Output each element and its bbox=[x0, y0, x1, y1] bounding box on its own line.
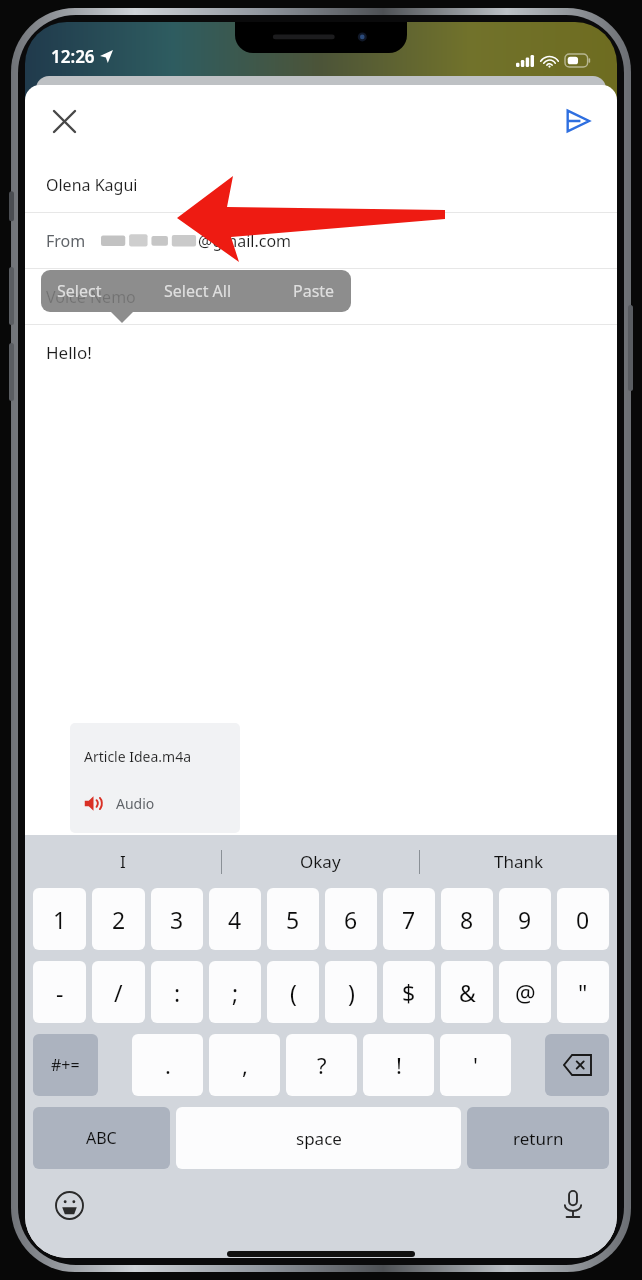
staticText: Select All bbox=[164, 280, 232, 302]
staticText: ABC bbox=[86, 1127, 117, 1149]
staticText: Article Idea.m4a bbox=[84, 747, 192, 766]
button[interactable]: Backspace bbox=[545, 1034, 609, 1096]
button[interactable]: & bbox=[441, 961, 493, 1023]
button[interactable]: @ bbox=[499, 961, 551, 1023]
button[interactable]: space bbox=[176, 1107, 461, 1169]
staticText: Voice Nemo bbox=[46, 286, 136, 308]
staticText: Olena Kagui bbox=[46, 174, 138, 196]
button[interactable]: 4 bbox=[209, 888, 261, 950]
button[interactable]: : bbox=[151, 961, 203, 1023]
button[interactable]: Article Idea.m4a bbox=[70, 723, 240, 833]
staticText: / bbox=[114, 977, 123, 1008]
button[interactable]: Olena Kagui bbox=[25, 157, 617, 212]
button[interactable]: " bbox=[557, 961, 609, 1023]
staticText: ' bbox=[473, 1050, 478, 1080]
staticText: 4 bbox=[228, 904, 242, 935]
staticText: #+= bbox=[51, 1054, 80, 1076]
button[interactable]: Okay bbox=[222, 835, 419, 888]
button[interactable]: ABC bbox=[33, 1107, 170, 1169]
staticText: 1 bbox=[53, 904, 67, 935]
staticText: 2 bbox=[112, 904, 126, 935]
button[interactable]: 6 bbox=[325, 888, 377, 950]
button[interactable]: , bbox=[209, 1034, 280, 1096]
staticText: space bbox=[296, 1127, 342, 1150]
button[interactable]: ; bbox=[209, 961, 261, 1023]
button[interactable]: I bbox=[25, 835, 221, 888]
staticText: 0 bbox=[576, 904, 590, 935]
button[interactable]: Select All bbox=[164, 280, 232, 302]
button[interactable]: 9 bbox=[499, 888, 551, 950]
staticText: - bbox=[56, 977, 64, 1008]
staticText: , bbox=[242, 1050, 248, 1080]
button[interactable]: Emoji bbox=[47, 1183, 91, 1227]
button[interactable]: Paste bbox=[293, 280, 335, 302]
button[interactable]: Send bbox=[555, 98, 601, 144]
button[interactable]: ) bbox=[325, 961, 377, 1023]
staticText: ) bbox=[348, 977, 355, 1008]
button[interactable]: 3 bbox=[151, 888, 203, 950]
button[interactable]: / bbox=[92, 961, 145, 1023]
staticText: 12:26 bbox=[51, 45, 95, 68]
staticText: ; bbox=[232, 977, 239, 1008]
button[interactable]: ? bbox=[286, 1034, 357, 1096]
button[interactable]: 2 bbox=[92, 888, 145, 950]
staticText: @gmail.com bbox=[198, 230, 292, 252]
button[interactable]: 8 bbox=[441, 888, 493, 950]
button[interactable]: Select bbox=[57, 280, 102, 302]
staticText: Okay bbox=[300, 850, 341, 873]
staticText: ? bbox=[317, 1050, 327, 1080]
staticText: ( bbox=[290, 977, 297, 1008]
button[interactable]: ' bbox=[440, 1034, 511, 1096]
staticText: return bbox=[513, 1127, 564, 1150]
button[interactable]: $ bbox=[383, 961, 435, 1023]
staticText: 9 bbox=[518, 904, 532, 935]
button[interactable]: ! bbox=[363, 1034, 434, 1096]
staticText: Hello! bbox=[46, 341, 92, 364]
staticText: @ bbox=[515, 977, 536, 1008]
staticText: : bbox=[174, 977, 181, 1008]
staticText: Select bbox=[57, 280, 102, 302]
button[interactable]: - bbox=[33, 961, 86, 1023]
button[interactable]: Dictation bbox=[551, 1183, 595, 1227]
staticText: I bbox=[120, 850, 126, 873]
staticText: 7 bbox=[402, 904, 416, 935]
button[interactable]: 0 bbox=[557, 888, 609, 950]
button[interactable]: From bbox=[25, 213, 617, 268]
staticText: $ bbox=[402, 977, 416, 1008]
staticText: & bbox=[459, 977, 476, 1008]
button[interactable]: Close bbox=[41, 98, 87, 144]
staticText: 3 bbox=[170, 904, 184, 935]
button[interactable]: . bbox=[132, 1034, 203, 1096]
button[interactable]: Thank bbox=[420, 835, 617, 888]
staticText: 6 bbox=[344, 904, 358, 935]
staticText: 8 bbox=[460, 904, 474, 935]
staticText: Paste bbox=[293, 280, 335, 302]
staticText: ! bbox=[396, 1050, 402, 1080]
button[interactable]: 1 bbox=[33, 888, 86, 950]
button[interactable]: Voice Nemo bbox=[25, 269, 617, 324]
button[interactable]: ( bbox=[267, 961, 319, 1023]
staticText: From bbox=[46, 230, 86, 252]
button[interactable]: #+= bbox=[33, 1034, 98, 1096]
staticText: " bbox=[578, 977, 588, 1008]
button[interactable]: 7 bbox=[383, 888, 435, 950]
staticText: 5 bbox=[286, 904, 300, 935]
staticText: . bbox=[165, 1050, 171, 1080]
staticText: Audio bbox=[116, 794, 155, 813]
button[interactable]: return bbox=[467, 1107, 609, 1169]
button[interactable]: 5 bbox=[267, 888, 319, 950]
staticText: Thank bbox=[494, 850, 544, 873]
